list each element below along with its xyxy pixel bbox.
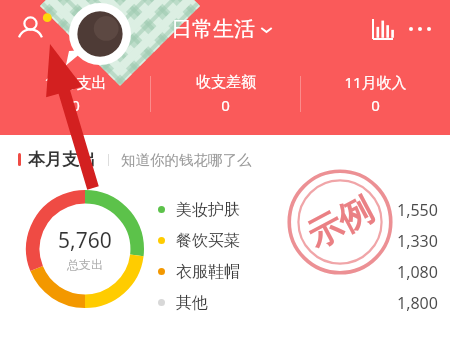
staticText: 1,330	[397, 230, 438, 252]
button[interactable]: 日常生活	[167, 12, 277, 46]
staticText: 示例	[300, 188, 380, 257]
staticText: 1,080	[397, 261, 438, 283]
button[interactable]: 衣服鞋帽	[158, 256, 438, 287]
staticText: 餐饮买菜	[176, 231, 240, 251]
staticText: 1,800	[397, 292, 438, 314]
button[interactable]: Statistics	[364, 11, 400, 47]
button[interactable]: 收支差额	[151, 71, 300, 117]
button[interactable]: More options	[400, 9, 440, 49]
staticText: 11月收入	[344, 72, 407, 92]
button[interactable]: 11月支出	[0, 70, 150, 117]
staticText: 知道你的钱花哪了么	[121, 151, 252, 169]
button[interactable]: 其他	[158, 287, 438, 318]
button[interactable]: Profile	[12, 8, 54, 50]
staticText: 美妆护肤	[176, 200, 240, 220]
staticText: 其他	[176, 293, 208, 313]
staticText: 5,760	[58, 226, 112, 255]
staticText: 总支出	[67, 257, 103, 272]
staticText: 日常生活	[171, 16, 255, 42]
button[interactable]: 美妆护肤	[158, 194, 438, 225]
staticText: 1,550	[397, 199, 438, 221]
staticText: 0	[371, 95, 380, 115]
staticText: 本月支出	[28, 149, 96, 170]
staticText: 0	[71, 95, 80, 115]
button[interactable]: 本月支出	[0, 135, 450, 184]
staticText: 收支差额	[196, 73, 256, 92]
staticText: 11月支出	[44, 72, 107, 92]
button[interactable]: 餐饮买菜	[158, 225, 438, 256]
staticText: 衣服鞋帽	[176, 262, 240, 282]
button[interactable]: 11月收入	[301, 70, 450, 117]
staticText: 0	[221, 95, 230, 115]
